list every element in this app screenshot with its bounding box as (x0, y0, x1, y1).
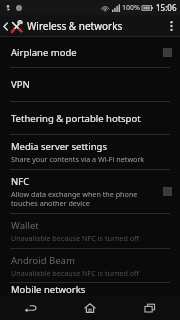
button[interactable]: Navigate up (0, 18, 27, 35)
staticText: Android Beam (11, 254, 75, 267)
staticText: Wireless & networks (27, 19, 123, 33)
button[interactable]: Back (0, 296, 60, 320)
staticText: 100% (122, 3, 140, 13)
button[interactable]: Airplane mode toggle, off (163, 48, 172, 57)
button[interactable]: Media server settings (0, 135, 180, 169)
button[interactable]: Mobile networks (0, 283, 180, 296)
staticText: Allow data exchange when the phone touch… (11, 189, 157, 208)
button[interactable]: Recent apps (120, 296, 180, 320)
button[interactable]: Wallet (0, 214, 180, 248)
staticText: Mobile networks (11, 283, 86, 296)
staticText: Tethering & portable hotspot (11, 112, 141, 125)
button[interactable]: Home (60, 296, 120, 320)
staticText: Unavailable because NFC is turned off (11, 233, 139, 243)
button[interactable]: Android Beam (0, 249, 180, 282)
button[interactable]: VPN (0, 68, 180, 101)
button[interactable]: More options (163, 17, 180, 35)
button[interactable]: NFC toggle, off (163, 187, 172, 196)
staticText: Airplane mode (11, 46, 77, 59)
staticText: Media server settings (11, 140, 107, 153)
staticText: NFC (11, 175, 30, 188)
button[interactable]: Tethering & portable hotspot (0, 102, 180, 134)
staticText: Share your contents via a Wi-Fi network (11, 154, 145, 164)
button[interactable]: Airplane mode (0, 37, 180, 67)
staticText: VPN (11, 78, 30, 91)
staticText: 15:06 (156, 2, 177, 13)
button[interactable]: NFC (0, 170, 180, 213)
staticText: Unavailable because NFC is turned off (11, 268, 139, 278)
staticText: Wallet (11, 219, 39, 232)
